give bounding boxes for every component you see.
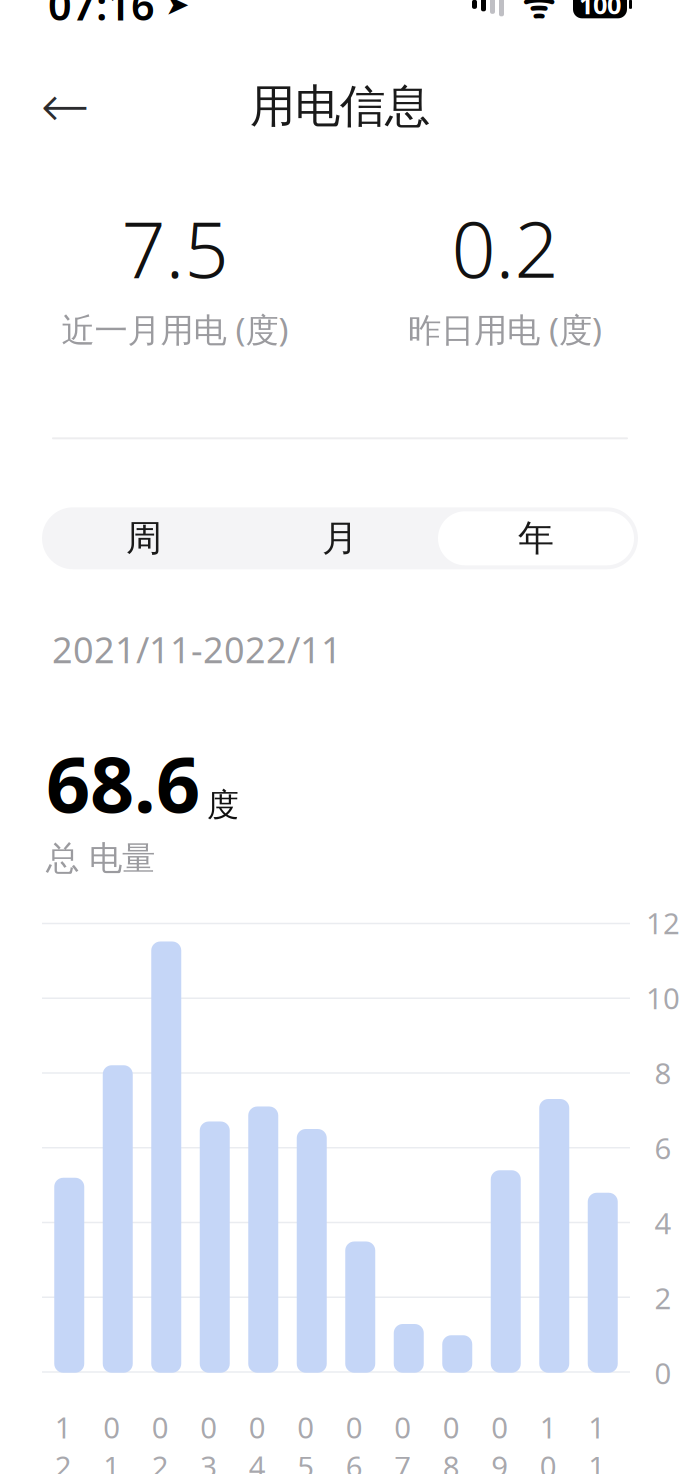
staticText: 09 [491,1408,508,1474]
button[interactable]: 年 [438,511,634,565]
staticText: 6 [654,1128,671,1167]
staticText: 7.5 [121,196,228,299]
staticText: 05 [297,1408,314,1474]
staticText: 4 [654,1203,671,1242]
staticText: 总 电量 [46,838,155,879]
staticText: 0 [654,1353,671,1392]
staticText: 12 [646,903,680,942]
staticText: 度 [207,785,239,825]
staticText: ← [40,73,89,140]
staticText: 昨日用电 (度) [408,307,602,351]
button[interactable]: 返回 [30,71,100,141]
staticText: 0.2 [451,196,558,299]
staticText: 12 [55,1408,72,1474]
staticText: 10 [540,1408,557,1474]
staticText: 01 [103,1408,120,1474]
staticText: 2021/11-2022/11 [52,625,342,673]
staticText: 近一月用电 (度) [61,307,288,351]
staticText: 11 [588,1408,605,1474]
staticText: 10 [646,978,680,1017]
staticText: 8 [654,1053,671,1092]
staticText: 年 [518,516,554,560]
button[interactable]: 周 [46,511,242,565]
staticText: 68.6 [46,731,200,834]
button[interactable]: 月 [242,511,438,565]
staticText: 02 [152,1408,169,1474]
staticText: 周 [126,516,162,560]
staticText: 08 [443,1408,460,1474]
staticText: 06 [346,1408,363,1474]
staticText: 用电信息 [250,78,430,134]
staticText: 07 [394,1408,411,1474]
staticText: ➤ [155,0,190,21]
staticText: 2 [654,1278,671,1317]
staticText: 月 [322,516,358,560]
staticText: 100 [579,0,621,21]
staticText: 07:16 [48,0,155,32]
staticText: 03 [200,1408,217,1474]
staticText: 04 [249,1408,266,1474]
staticText: ᯤ [504,0,573,28]
